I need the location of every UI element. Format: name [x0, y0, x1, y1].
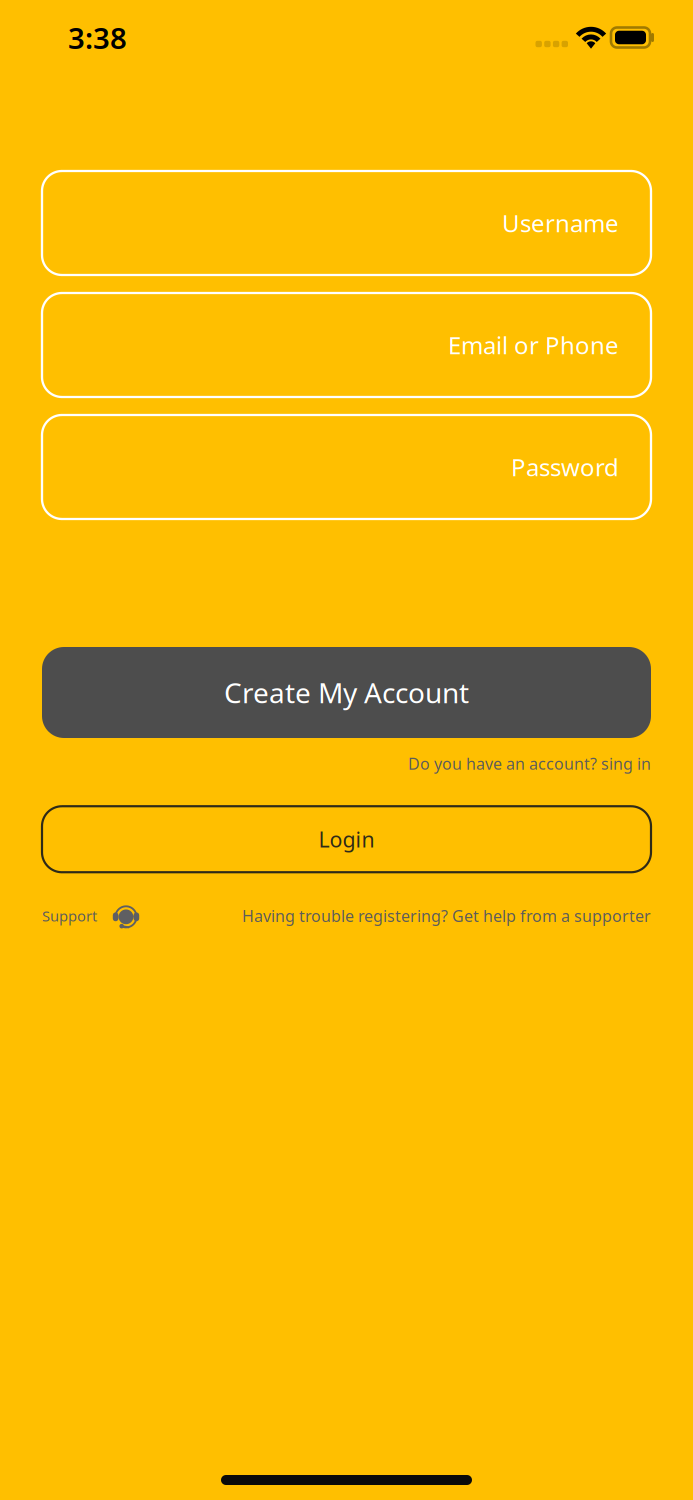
staticText: Having trouble registering? Get help fro…	[242, 905, 651, 926]
staticText: Username	[502, 207, 619, 239]
staticText: 3:38	[68, 18, 127, 57]
button[interactable]: Support	[42, 902, 140, 929]
button[interactable]: Login	[42, 806, 651, 872]
staticText: Do you have an account? sing in	[408, 753, 651, 774]
button[interactable]: Password	[42, 415, 651, 519]
button[interactable]: Do you have an account? sing in	[42, 753, 651, 774]
staticText: Create My Account	[224, 674, 469, 711]
staticText: Email or Phone	[448, 329, 619, 361]
button[interactable]: Having trouble registering? Get help fro…	[242, 905, 651, 926]
staticText: Login	[318, 825, 374, 853]
staticText: Support	[42, 906, 97, 925]
button[interactable]: Email or Phone	[42, 293, 651, 397]
staticText: Password	[511, 451, 619, 483]
button[interactable]: Username	[42, 171, 651, 275]
button[interactable]: Create My Account	[42, 647, 651, 738]
